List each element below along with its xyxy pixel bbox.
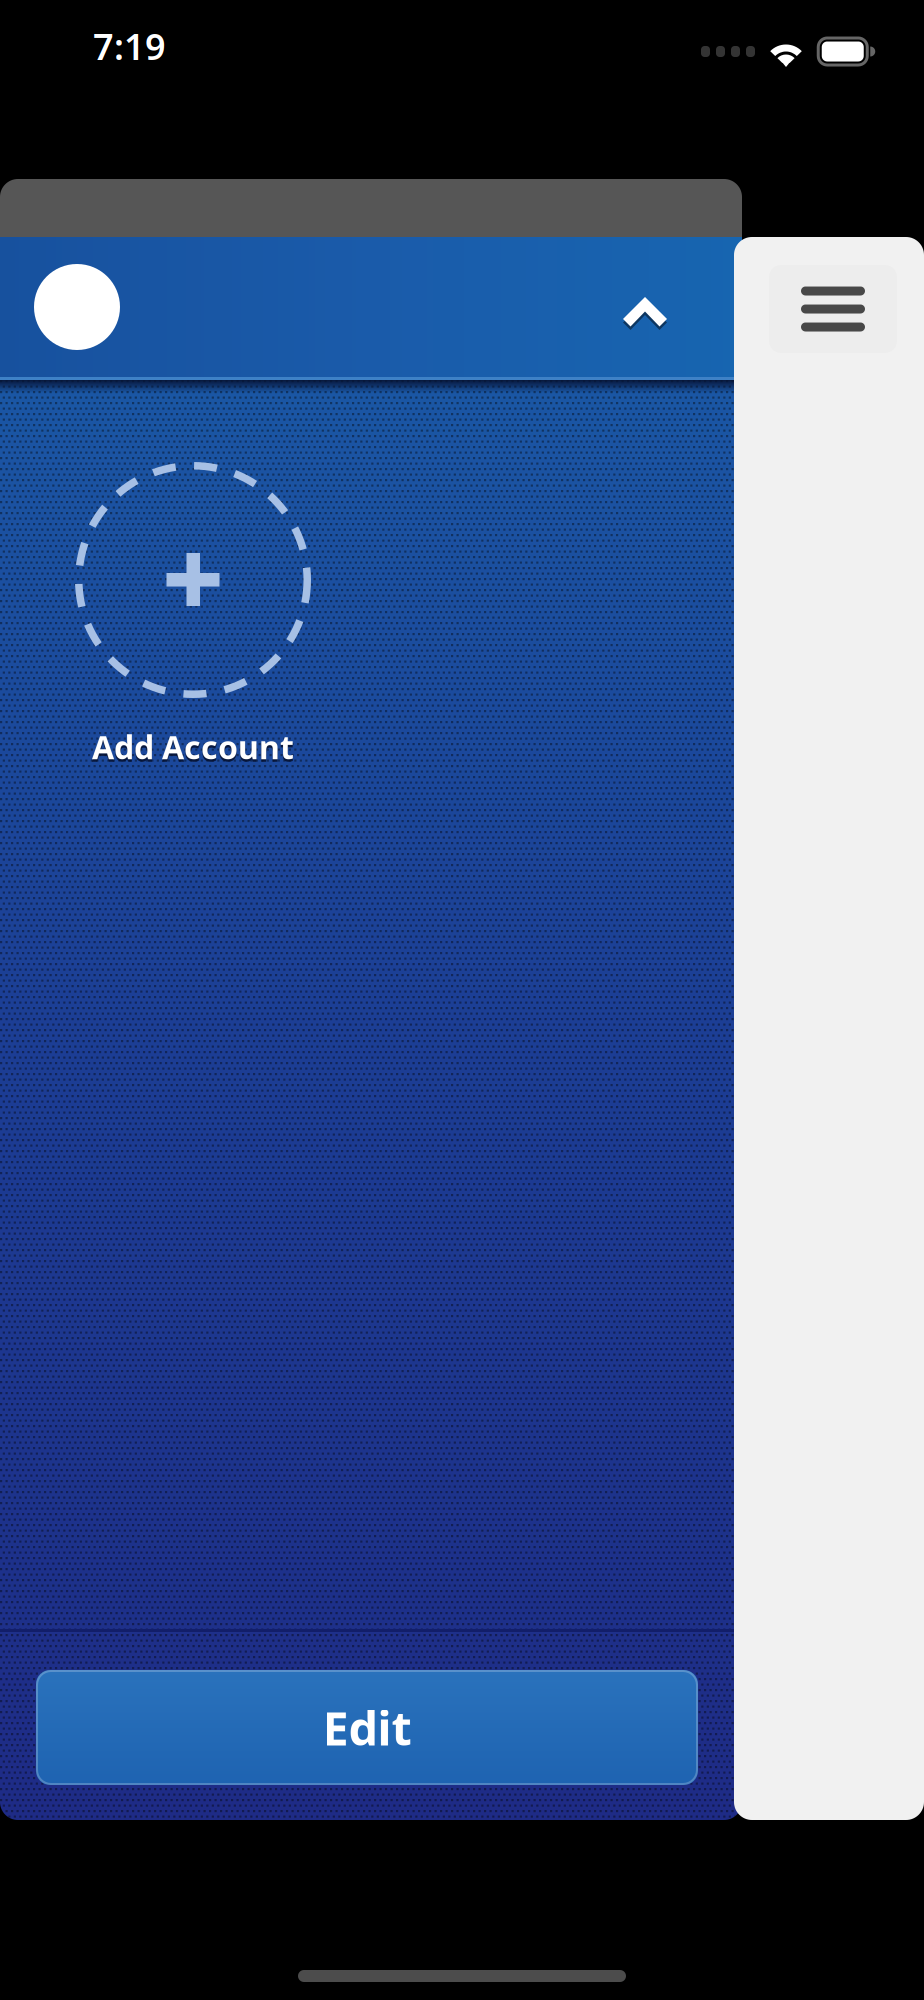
staticText: 7:19: [93, 22, 166, 70]
button[interactable]: Menu: [769, 265, 897, 353]
staticText: Add Account: [92, 728, 294, 770]
button[interactable]: Profile: [34, 264, 120, 350]
button[interactable]: Collapse: [623, 283, 667, 331]
staticText: Add Account: [92, 725, 294, 768]
button[interactable]: Add Account: [75, 462, 311, 770]
staticText: Edit: [322, 1696, 411, 1758]
button[interactable]: Edit: [0, 1632, 742, 1820]
